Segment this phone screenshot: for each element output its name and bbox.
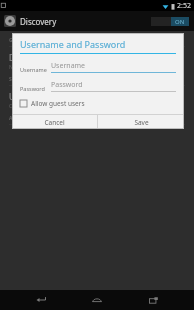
staticText: Password <box>51 80 83 90</box>
button[interactable]: Device Name <box>9 47 185 76</box>
staticText: Configure username and password to acces… <box>9 103 141 110</box>
staticText: Username <box>51 61 86 71</box>
staticText: Username and Password <box>9 91 103 102</box>
staticText: GENERAL <box>9 37 35 44</box>
button[interactable]: Home <box>82 290 112 310</box>
button[interactable]: Username and Password <box>9 86 185 115</box>
staticText: Discovery <box>20 16 57 27</box>
staticText: Cancel <box>44 118 65 127</box>
staticText: Nexus 7 <box>9 64 28 71</box>
button[interactable]: Username <box>51 61 176 73</box>
staticText: Allow guest users <box>31 99 85 108</box>
staticText: Username <box>20 66 47 73</box>
button[interactable]: Back <box>26 290 56 310</box>
button[interactable]: Password <box>51 80 176 92</box>
staticText: ON <box>175 18 185 26</box>
button[interactable]: Cancel <box>12 115 97 129</box>
staticText: Device Name <box>9 52 59 63</box>
staticText: Username and Password <box>20 38 126 50</box>
button[interactable]: Discovery on/off <box>151 17 189 26</box>
button[interactable]: Save <box>98 115 184 129</box>
staticText: Save <box>134 118 149 127</box>
staticText: Password <box>20 85 45 92</box>
staticText: 2:52 <box>177 1 191 11</box>
staticText: ADD-ONS <box>9 115 35 122</box>
staticText: SECURITY <box>9 76 36 83</box>
button[interactable]: Allow guest users <box>20 99 176 108</box>
button[interactable]: Recent apps <box>138 290 168 310</box>
